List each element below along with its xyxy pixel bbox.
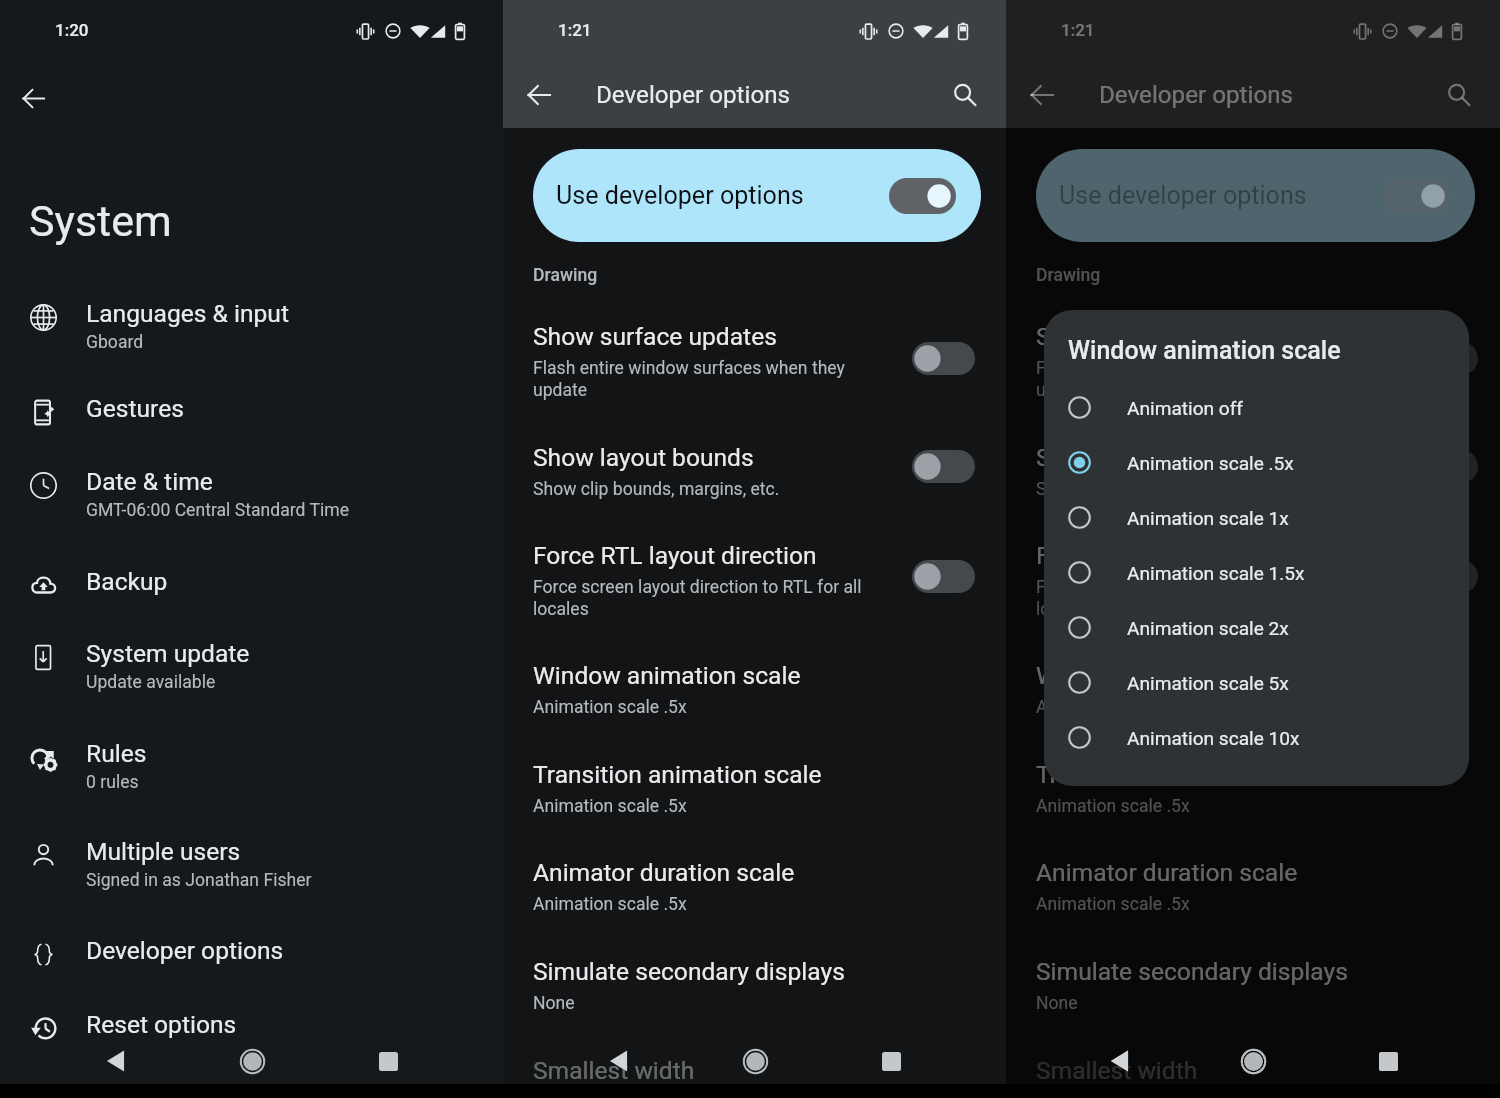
button[interactable]: Back xyxy=(596,1039,640,1083)
button[interactable]: Home xyxy=(1231,1039,1275,1083)
staticText: Animation off xyxy=(1127,397,1243,419)
staticText: Transition animation scale xyxy=(533,760,822,789)
button[interactable]: Rules xyxy=(0,739,503,837)
button[interactable]: Animation scale 1.5x xyxy=(1044,545,1469,600)
button[interactable]: Home xyxy=(1231,1039,1275,1083)
button[interactable]: Recents xyxy=(366,1039,410,1083)
staticText: Animation scale .5x xyxy=(1127,452,1294,474)
button[interactable]: Developer options xyxy=(0,936,503,1010)
staticText: Animation scale 2x xyxy=(1127,617,1289,639)
button[interactable]: Animation scale .5x xyxy=(1044,435,1469,490)
staticText: Animation scale 5x xyxy=(1127,672,1289,694)
staticText: None xyxy=(1036,993,1078,1014)
button[interactable]: Animation off xyxy=(1044,380,1469,435)
button[interactable]: Recents xyxy=(1366,1039,1410,1083)
button[interactable]: Back xyxy=(93,1039,137,1083)
staticText: Developer options xyxy=(86,936,284,965)
button[interactable]: Home xyxy=(733,1039,777,1083)
button[interactable]: Languages & input xyxy=(0,299,503,394)
staticText: Show layout bounds xyxy=(1036,443,1257,472)
staticText: Simulate secondary displays xyxy=(533,957,845,986)
staticText: Drawing xyxy=(1036,265,1101,286)
button[interactable]: Back xyxy=(515,71,563,119)
button[interactable]: Animation scale 5x xyxy=(1044,655,1469,710)
button[interactable]: Date & time xyxy=(0,467,503,567)
button[interactable]: Animator duration scale xyxy=(503,858,1006,957)
staticText: Signed in as Jonathan Fisher xyxy=(86,870,312,891)
button[interactable]: Simulate secondary displays xyxy=(503,957,1006,1056)
button[interactable]: Reset options xyxy=(0,1010,503,1084)
staticText: Smallest width xyxy=(1036,1056,1198,1085)
button[interactable]: Force RTL layout direction xyxy=(1006,541,1500,661)
button[interactable]: Recents xyxy=(869,1039,913,1083)
staticText: System xyxy=(29,196,172,246)
staticText: Reset options xyxy=(86,1010,237,1039)
staticText: Date & time xyxy=(86,467,213,496)
button[interactable]: Animation scale 2x xyxy=(1044,600,1469,655)
staticText: Backup xyxy=(86,567,168,596)
staticText: Use developer options xyxy=(1059,181,1307,210)
button[interactable]: Back xyxy=(1018,71,1066,119)
button[interactable]: Window animation scale xyxy=(1006,661,1500,760)
staticText: Animation scale .5x xyxy=(533,697,687,718)
staticText: Window animation scale xyxy=(1036,661,1304,690)
staticText: Animator duration scale xyxy=(533,858,795,887)
staticText: Use developer options xyxy=(556,181,804,210)
staticText: None xyxy=(533,993,575,1014)
staticText: Developer options xyxy=(596,81,791,109)
button[interactable]: Show layout bounds xyxy=(503,443,1006,541)
staticText: Force screen layout direction to RTL for… xyxy=(1036,577,1380,620)
staticText: Show surface updates xyxy=(1036,322,1280,351)
staticText: Show clip bounds, margins, etc. xyxy=(1036,479,1283,500)
staticText: GMT-06:00 Central Standard Time xyxy=(86,500,349,521)
button[interactable]: Force RTL layout direction xyxy=(503,541,1006,661)
button[interactable]: Multiple users xyxy=(0,837,503,936)
button[interactable]: Animator duration scale xyxy=(1006,858,1500,957)
button[interactable]: Transition animation scale xyxy=(503,760,1006,858)
staticText: Animation scale .5x xyxy=(533,894,687,915)
staticText: Animation scale 1.5x xyxy=(1127,562,1305,584)
button[interactable]: Use developer options xyxy=(533,149,981,242)
staticText: 1:21 xyxy=(1061,20,1095,40)
button[interactable]: Show surface updates xyxy=(503,322,1006,443)
staticText: Animation scale 10x xyxy=(1127,727,1300,749)
staticText: 0 rules xyxy=(86,772,139,793)
button[interactable]: Backup xyxy=(0,567,503,639)
staticText: Gboard xyxy=(86,332,144,353)
button[interactable]: Search xyxy=(941,71,989,119)
staticText: Animation scale .5x xyxy=(533,796,687,817)
staticText: Languages & input xyxy=(86,299,289,328)
button[interactable]: Smallest width xyxy=(503,1056,1006,1098)
staticText: Animator duration scale xyxy=(1036,858,1298,887)
staticText: Animation scale .5x xyxy=(1036,796,1190,817)
button[interactable]: Search xyxy=(1435,71,1483,119)
button[interactable]: Back xyxy=(1097,1039,1141,1083)
button[interactable]: Back xyxy=(10,75,57,122)
button[interactable]: Simulate secondary displays xyxy=(1006,957,1500,1056)
staticText: Gestures xyxy=(86,394,184,423)
staticText: Multiple users xyxy=(86,837,241,866)
staticText: 1:20 xyxy=(55,20,89,40)
button[interactable]: Transition animation scale xyxy=(1006,760,1500,858)
staticText: Transition animation scale xyxy=(1036,760,1325,789)
button[interactable]: Home xyxy=(230,1039,274,1083)
staticText: Force RTL layout direction xyxy=(1036,541,1320,570)
button[interactable]: Animation scale 10x xyxy=(1044,710,1469,765)
staticText: Rules xyxy=(86,739,147,768)
button[interactable]: Smallest width xyxy=(1006,1056,1500,1098)
button[interactable]: Back xyxy=(1097,1039,1141,1083)
staticText: Flash entire window surfaces when they u… xyxy=(1036,358,1380,401)
staticText: 1:21 xyxy=(558,20,592,40)
button[interactable]: Animation scale 1x xyxy=(1044,490,1469,545)
button[interactable]: System update xyxy=(0,639,503,739)
button[interactable]: Gestures xyxy=(0,394,503,467)
button[interactable]: Show layout bounds xyxy=(1006,443,1500,541)
button[interactable]: Recents xyxy=(1366,1039,1410,1083)
button[interactable]: Use developer options xyxy=(1036,149,1475,242)
staticText: System update xyxy=(86,639,250,668)
staticText: Update available xyxy=(86,672,216,693)
button[interactable]: Show surface updates xyxy=(1006,322,1500,443)
button[interactable]: Window animation scale xyxy=(503,661,1006,760)
